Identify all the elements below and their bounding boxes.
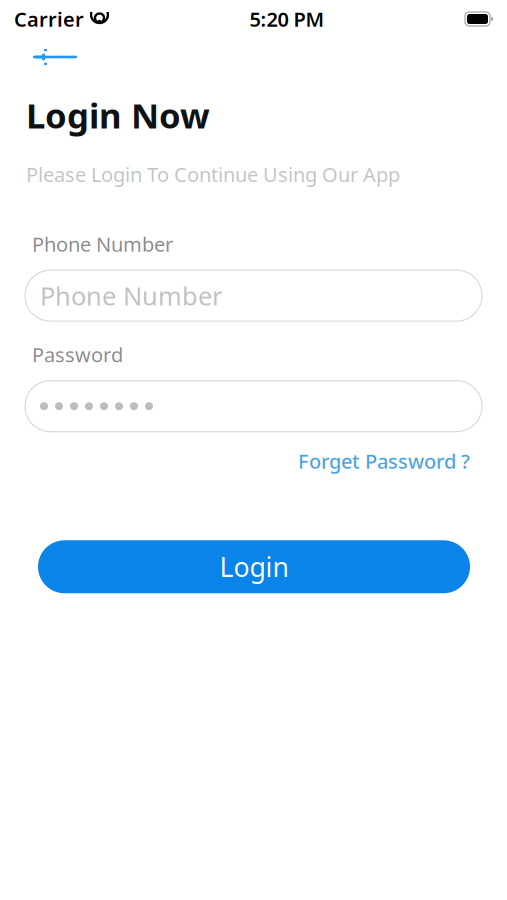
staticText: Please Login To Continue Using Our App bbox=[26, 161, 400, 188]
button[interactable]: Login bbox=[38, 540, 470, 593]
button[interactable] bbox=[25, 381, 482, 432]
staticText: Password bbox=[32, 341, 123, 368]
button[interactable]: Back bbox=[0, 40, 94, 74]
button[interactable]: Forget Password ? bbox=[294, 442, 474, 480]
staticText: 5:20 PM bbox=[249, 6, 324, 32]
staticText: Phone Number bbox=[40, 279, 222, 312]
button[interactable]: Phone Number bbox=[25, 270, 482, 321]
staticText: Phone Number bbox=[32, 231, 173, 257]
staticText: Login bbox=[219, 549, 288, 584]
staticText: Forget Password ? bbox=[298, 448, 470, 474]
staticText: Login Now bbox=[26, 92, 210, 138]
staticText: Carrier bbox=[14, 6, 84, 32]
